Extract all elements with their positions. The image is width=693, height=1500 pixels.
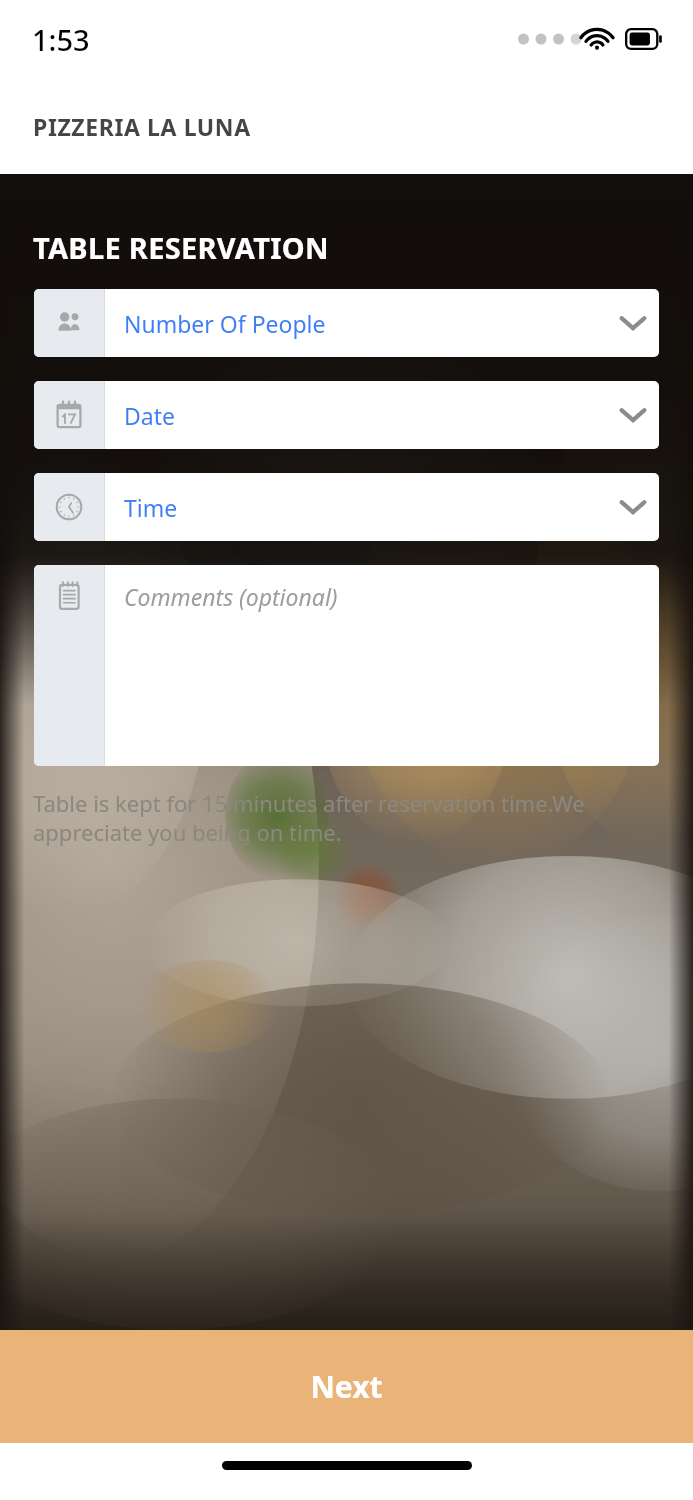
button[interactable]: Next [0,1330,693,1443]
staticText: Number Of People [124,308,607,339]
staticText: PIZZERIA LA LUNA [33,111,251,142]
staticText: Table is kept for 15 minutes after reser… [33,788,633,847]
staticText: 1:53 [32,20,90,59]
button[interactable]: Comments (optional) [34,565,659,766]
button[interactable]: Number Of People [34,289,659,357]
button[interactable]: Date [34,381,659,449]
staticText: Comments (optional) [124,581,338,612]
staticText: Date [124,400,607,431]
button[interactable]: Time [34,473,659,541]
staticText: TABLE RESERVATION [33,228,329,267]
staticText: Next [310,1366,383,1407]
staticText: Time [124,492,607,523]
